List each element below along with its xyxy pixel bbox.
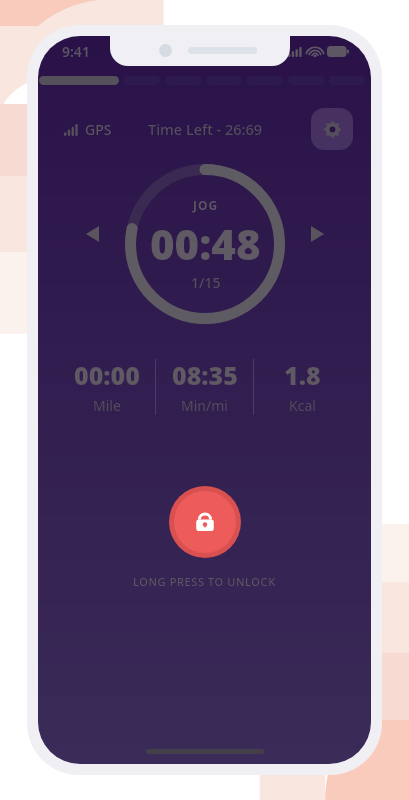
staticText: 00:48: [150, 215, 261, 272]
staticText: GPS: [85, 120, 112, 139]
staticText: Mile: [93, 396, 121, 415]
staticText: 00:00: [74, 358, 140, 392]
button[interactable]: Long press to unlock: [169, 486, 241, 558]
staticText: Kcal: [289, 396, 316, 415]
button[interactable]: 1.8: [254, 358, 351, 415]
staticText: JOG: [193, 197, 219, 213]
staticText: LONG PRESS TO UNLOCK: [133, 574, 276, 589]
button[interactable]: Previous interval: [74, 216, 110, 252]
button[interactable]: Settings: [311, 108, 353, 150]
staticText: 1/15: [191, 273, 221, 292]
staticText: 08:35: [172, 358, 238, 392]
button[interactable]: GPS: [60, 116, 116, 143]
staticText: Time Left - 26:69: [148, 119, 262, 139]
button[interactable]: 00:00: [58, 358, 155, 415]
button[interactable]: Next interval: [299, 216, 335, 252]
staticText: 1.8: [284, 358, 321, 392]
staticText: 9:41: [62, 42, 90, 61]
staticText: Min/mi: [181, 396, 228, 415]
button[interactable]: 08:35: [156, 358, 253, 415]
